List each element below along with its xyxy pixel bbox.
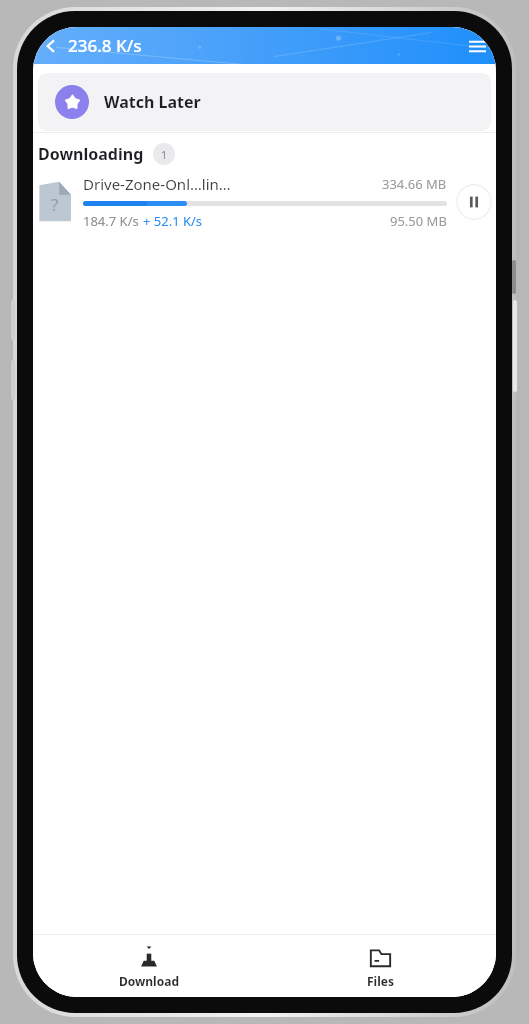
button[interactable]: Files (264, 938, 496, 995)
staticText: 184.7 K/s (83, 212, 143, 230)
staticText: Downloading (38, 143, 144, 165)
staticText: Drive-Zone-Onl…line.com.xapk (83, 174, 232, 194)
staticText: 1 (161, 147, 168, 162)
staticText: Files (367, 973, 394, 989)
staticText: ? (51, 193, 59, 216)
staticText: Watch Later (104, 91, 201, 113)
staticText: Download (119, 973, 179, 989)
staticText: + 52.1 K/s (143, 212, 203, 230)
button[interactable]: Download (33, 938, 264, 995)
staticText: 334.66 MB (382, 175, 447, 193)
button[interactable]: Watch Later (38, 73, 491, 131)
staticText: 95.50 MB (390, 212, 447, 230)
button[interactable]: Back (37, 32, 65, 60)
button[interactable]: Pause download (456, 184, 492, 220)
button[interactable]: ? (33, 171, 496, 233)
staticText: 236.8 K/s (68, 34, 142, 57)
button[interactable]: Menu (462, 31, 492, 61)
